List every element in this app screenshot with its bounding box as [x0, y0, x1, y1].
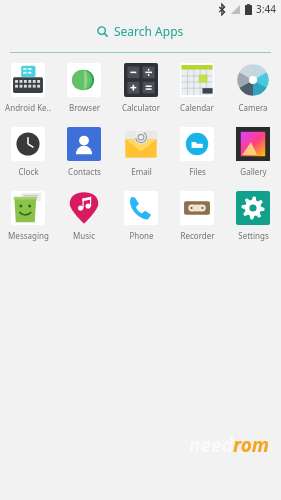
other: keyboard — [11, 63, 45, 97]
button[interactable]: gallery — [228, 127, 278, 177]
button[interactable]: browser — [59, 63, 109, 113]
button[interactable]: files — [172, 127, 222, 177]
other: camera — [236, 63, 270, 97]
staticText: 3:44 — [256, 2, 276, 16]
button[interactable]: settings — [228, 191, 278, 241]
button[interactable]: contacts — [59, 127, 109, 177]
other: clock — [11, 127, 45, 161]
staticText: Settings — [238, 230, 269, 241]
button[interactable]: calendar — [172, 63, 222, 113]
other: files — [180, 127, 214, 161]
staticText: Contacts — [68, 166, 101, 177]
button[interactable]: phone — [116, 191, 166, 241]
button[interactable]: recorder — [172, 191, 222, 241]
other: browser — [67, 63, 101, 97]
staticText: Browser — [69, 102, 100, 113]
staticText: Phone — [129, 230, 154, 241]
button[interactable]: calculator — [116, 63, 166, 113]
staticText: Email — [131, 166, 152, 177]
button[interactable]: Search Apps — [0, 17, 281, 45]
staticText: Calculator — [122, 102, 160, 113]
staticText: need — [189, 432, 233, 458]
other: phone — [124, 191, 158, 225]
staticText: Files — [189, 166, 206, 177]
other: recorder — [180, 191, 214, 225]
button[interactable]: messaging — [3, 191, 53, 241]
other: calendar — [180, 63, 214, 97]
other: messaging — [11, 191, 45, 225]
staticText: Recorder — [180, 230, 215, 241]
staticText: rom — [233, 432, 269, 458]
button[interactable]: keyboard — [3, 63, 53, 113]
button[interactable]: email — [116, 127, 166, 177]
other: contacts — [67, 127, 101, 161]
other: calculator — [124, 63, 158, 97]
staticText: Gallery — [240, 166, 267, 177]
button[interactable]: music — [59, 191, 109, 241]
button[interactable]: clock — [3, 127, 53, 177]
other: email — [124, 127, 158, 161]
other: settings — [236, 191, 270, 225]
staticText: Calendar — [180, 102, 214, 113]
staticText: Clock — [18, 166, 39, 177]
staticText: Messaging — [8, 230, 49, 241]
other: gallery — [236, 127, 270, 161]
other: music — [67, 191, 101, 225]
staticText: Search Apps — [114, 23, 184, 39]
staticText: Android Ke.. — [5, 102, 51, 113]
staticText: Music — [73, 230, 95, 241]
staticText: Camera — [238, 102, 268, 113]
button[interactable]: camera — [228, 63, 278, 113]
